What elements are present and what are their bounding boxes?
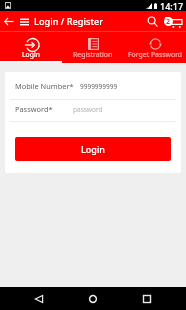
button[interactable]: Mobile Number* — [15, 80, 172, 92]
staticText: 9999999999 — [80, 82, 118, 91]
staticText: 2 — [166, 17, 171, 26]
button[interactable]: Cart, 2 items — [162, 11, 184, 32]
button[interactable]: Registration — [62, 32, 124, 61]
button[interactable]: Password* — [15, 103, 172, 115]
staticText: Login — [81, 143, 105, 155]
staticText: Registration — [73, 50, 113, 59]
button[interactable]: Home — [81, 287, 105, 310]
button[interactable]: Back — [27, 287, 51, 310]
button[interactable]: Menu — [17, 11, 31, 32]
staticText: Login / Register — [34, 15, 104, 28]
button[interactable]: Login — [0, 32, 62, 61]
staticText: Login — [22, 50, 41, 59]
staticText: password — [73, 105, 103, 114]
button[interactable]: Search — [142, 11, 162, 32]
staticText: Mobile Number* — [15, 81, 74, 91]
button[interactable]: Login — [15, 137, 171, 161]
staticText: Password* — [15, 104, 53, 114]
staticText: Forget Password — [128, 50, 183, 59]
button[interactable]: Recent apps — [135, 287, 159, 310]
staticText: 14:17 — [160, 0, 184, 11]
button[interactable]: Forget Password — [124, 32, 186, 61]
button[interactable]: Back — [1, 11, 15, 32]
